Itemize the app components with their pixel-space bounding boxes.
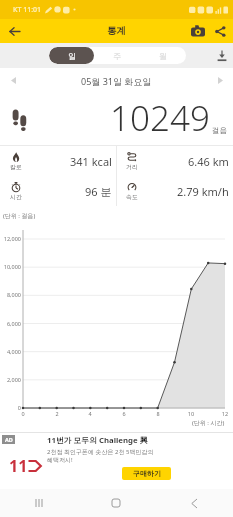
staticText: 2.79 km/h [177,184,229,199]
button[interactable]: Home [77,489,155,517]
staticText: 8,000 [0,291,21,298]
button[interactable]: 주 [94,47,140,64]
staticText: 구매하기 [133,469,161,478]
button[interactable]: AD [0,433,233,489]
staticText: 0 [0,404,21,411]
staticText: 96 분 [85,184,112,199]
staticText: 05월 31일 화요일 [81,75,152,87]
staticText: 월 [159,51,167,61]
staticText: 10 [183,410,199,417]
staticText: 2,000 [0,376,21,383]
staticText: 주 [113,51,121,61]
staticText: 칼로 [10,163,22,171]
staticText: 12 [217,410,233,417]
staticText: 12,000 [0,235,21,242]
staticText: 2천점 최인구폰에 솟산은 2천 5백민갑의 [47,448,154,456]
button[interactable]: Back [155,489,233,517]
button[interactable]: Share [209,19,231,43]
staticText: 일 [68,51,76,61]
staticText: 8 [150,410,166,417]
button[interactable]: Back [0,19,29,43]
staticText: 속도 [126,193,138,201]
staticText: 거리 [126,163,138,171]
staticText: 시간 [10,193,22,201]
button[interactable]: 일 [49,47,94,64]
staticText: 통계 [107,25,126,37]
button[interactable]: 월 [140,47,186,64]
staticText: AD [5,436,13,443]
button[interactable]: 구매하기 [122,467,171,480]
staticText: 11번가 모두의 Challenge 興 [47,435,148,446]
staticText: 6.46 km [188,154,229,169]
button[interactable]: Recent apps [0,489,77,517]
button[interactable]: Next day [207,68,233,93]
staticText: 0 [15,410,31,417]
staticText: 10249 [110,94,210,142]
staticText: 341 kcal [70,154,112,169]
staticText: (단위 : 시간) [192,419,225,427]
staticText: 4 [82,410,98,417]
staticText: 혜택저시! [47,456,73,464]
staticText: 4,000 [0,348,21,355]
staticText: 6 [116,410,132,417]
button[interactable]: Previous day [0,68,26,93]
button[interactable]: Download [210,43,233,68]
staticText: 걸음 [212,126,227,135]
staticText: 10,000 [0,263,21,270]
staticText: 11 [9,455,28,477]
button[interactable]: Camera [187,19,209,43]
staticText: 2 [49,410,65,417]
staticText: (단위 : 걸음) [3,212,36,220]
staticText: 6,000 [0,320,21,327]
staticText: KT 11:01 [13,5,42,15]
